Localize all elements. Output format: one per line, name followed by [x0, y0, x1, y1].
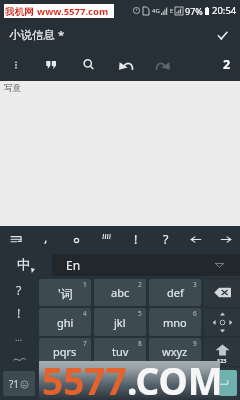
staticText: En	[66, 257, 81, 273]
staticText: !	[17, 305, 21, 322]
button[interactable]: More options	[5, 48, 27, 81]
button[interactable]: 2	[223, 56, 231, 73]
staticText: 3	[193, 280, 197, 289]
button[interactable]: !	[125, 226, 147, 252]
staticText: 6	[193, 309, 197, 318]
staticText: !	[134, 231, 138, 248]
staticText: .COM	[127, 355, 223, 400]
staticText: 97%	[185, 5, 203, 17]
button[interactable]	[95, 226, 117, 252]
staticText: 0	[117, 376, 124, 391]
staticText: ?1	[9, 377, 20, 391]
staticText: 写意	[4, 83, 21, 94]
button[interactable]: '词	[39, 279, 91, 306]
button[interactable]: Expand candidates	[211, 257, 227, 273]
button[interactable]: abc	[94, 279, 146, 306]
button[interactable]: Move right	[215, 226, 237, 252]
staticText: 8	[138, 339, 142, 348]
staticText: tuv	[112, 344, 129, 359]
staticText: E	[170, 7, 174, 14]
staticText: jkl	[114, 315, 126, 330]
staticText: def	[167, 285, 184, 300]
button[interactable]: ?	[155, 226, 177, 252]
staticText: wxyz	[162, 344, 188, 359]
staticText: '词	[58, 285, 73, 301]
button[interactable]: tuv	[94, 338, 146, 365]
staticText: mno	[163, 315, 187, 330]
staticText: ?	[16, 282, 22, 299]
button[interactable]	[65, 226, 87, 252]
button[interactable]: !	[0, 302, 38, 325]
staticText: pqrs	[53, 344, 77, 359]
button[interactable]: ，	[39, 371, 91, 396]
staticText: ，	[60, 377, 71, 391]
staticText: 4G	[152, 7, 160, 15]
button[interactable]: pqrs	[39, 338, 91, 365]
button[interactable]: Cursor move	[204, 308, 240, 336]
button[interactable]: Enter	[206, 370, 237, 396]
button[interactable]: Quote	[40, 48, 62, 81]
staticText: 7	[83, 339, 87, 348]
button[interactable]: Shift	[204, 338, 240, 370]
button[interactable]: ,	[35, 226, 57, 252]
button[interactable]: jkl	[94, 308, 146, 336]
staticText: 我机网	[5, 6, 34, 18]
staticText: ghi	[57, 315, 74, 330]
staticText: 2	[138, 280, 142, 289]
staticText: …	[15, 331, 23, 343]
staticText: 123	[217, 357, 227, 364]
staticText: ?	[163, 231, 169, 248]
button[interactable]: 。	[149, 371, 201, 396]
staticText: 2	[223, 56, 231, 73]
staticText: www.5577.com	[37, 5, 109, 18]
staticText: 5	[138, 309, 142, 318]
staticText: 1	[83, 280, 87, 289]
button[interactable]	[0, 348, 38, 371]
button[interactable]: En	[52, 254, 240, 276]
button[interactable]: Indent	[5, 226, 27, 252]
button[interactable]: Save	[212, 25, 232, 45]
staticText: 20:54	[212, 4, 237, 17]
button[interactable]: …	[0, 325, 38, 348]
staticText: 中	[17, 256, 31, 273]
staticText: ,	[44, 228, 48, 246]
button[interactable]: Search	[77, 48, 99, 81]
button[interactable]: ?1	[3, 371, 35, 396]
button[interactable]: Backspace	[204, 279, 240, 306]
button[interactable]: Undo	[115, 48, 137, 81]
staticText: 小说信息 *	[9, 27, 65, 43]
staticText: 。	[170, 377, 181, 391]
staticText: 9	[193, 339, 197, 348]
button[interactable]: 0	[94, 371, 146, 396]
staticText: 5577	[42, 355, 127, 400]
staticText: abc	[111, 285, 130, 300]
button[interactable]: ?	[0, 279, 38, 302]
button[interactable]: ghi	[39, 308, 91, 336]
button[interactable]: mno	[149, 308, 201, 336]
staticText: 4	[83, 309, 87, 318]
button[interactable]: wxyz	[149, 338, 201, 365]
button[interactable]: Redo	[152, 48, 174, 81]
button[interactable]: def	[149, 279, 201, 306]
button[interactable]: 中	[0, 252, 52, 276]
button[interactable]: Move left	[185, 226, 207, 252]
